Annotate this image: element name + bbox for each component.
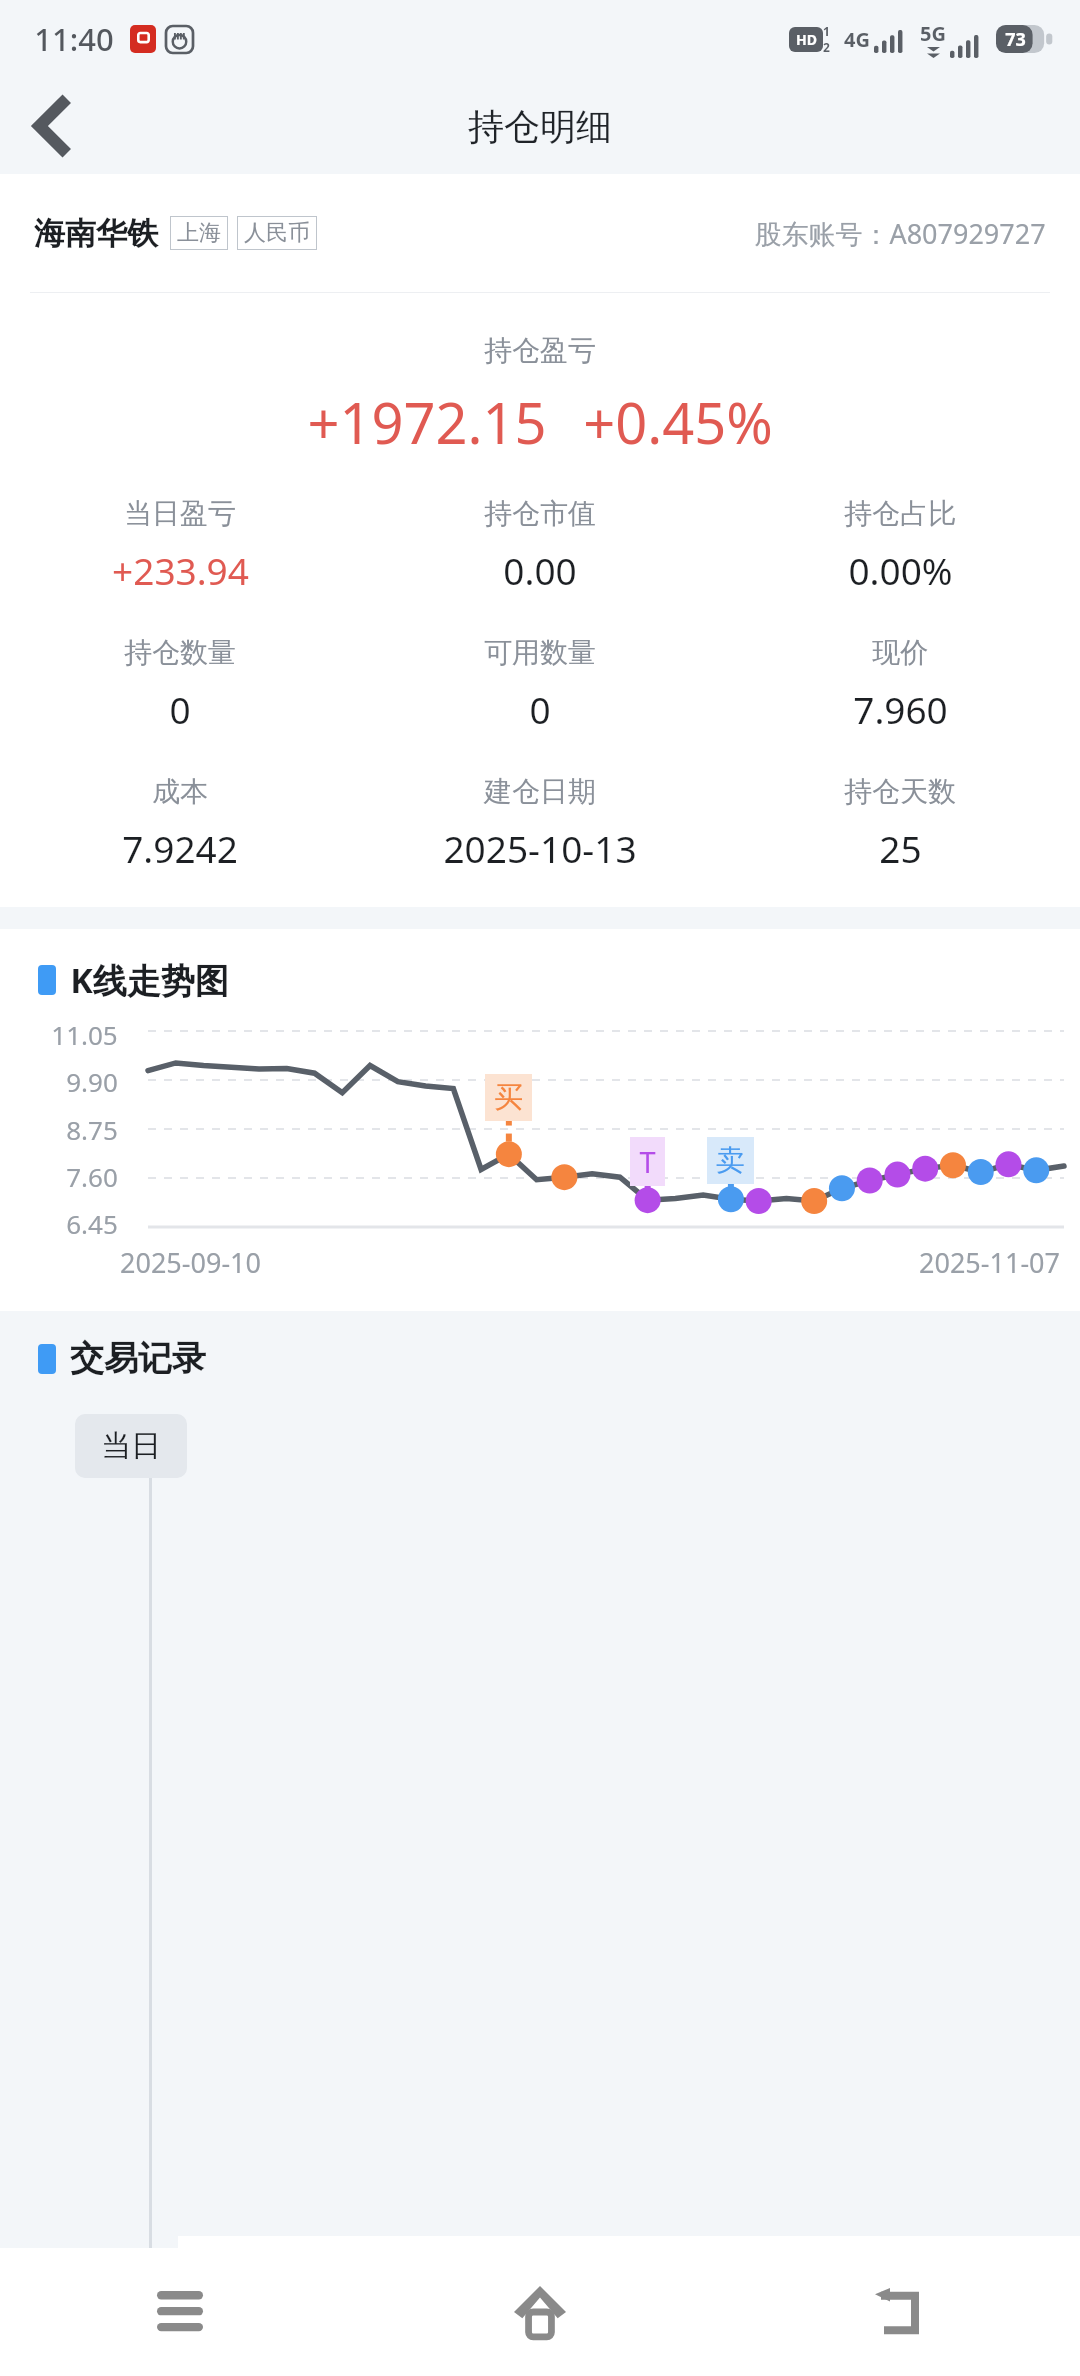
staticText: 1 [823, 23, 830, 39]
staticText: +1972.15 [307, 384, 547, 460]
staticText: 卖 [716, 1142, 745, 1179]
staticText: 成本 [152, 774, 208, 809]
staticText: 持仓明细 [468, 104, 612, 149]
staticText: 2025-11-07 [919, 1244, 1060, 1281]
staticText: HD [796, 30, 817, 49]
staticText: 0 [169, 684, 191, 734]
staticText: 2 [823, 39, 830, 55]
button[interactable]: 当日 [75, 1414, 187, 1478]
staticText: 5G [920, 20, 946, 47]
staticText: 0 [529, 684, 551, 734]
button[interactable]: Back [14, 88, 90, 164]
staticText: 2025-09-10 [120, 1244, 261, 1281]
staticText: 73 [1005, 27, 1026, 52]
staticText: +233.94 [112, 545, 249, 595]
staticText: 持仓天数 [844, 774, 956, 809]
staticText: 人民币 [244, 219, 310, 247]
staticText: 当日 [101, 1427, 161, 1465]
staticText: 持仓盈亏 [484, 333, 596, 368]
staticText: 2025-10-13 [443, 823, 637, 873]
staticText: 可用数量 [484, 635, 596, 670]
staticText: 股东账号：A807929727 [754, 215, 1046, 252]
staticText: K线走势图 [70, 957, 229, 1003]
staticText: 7.9242 [122, 823, 238, 873]
staticText: 建仓日期 [484, 774, 596, 809]
button[interactable]: Back [720, 2248, 1080, 2376]
staticText: 持仓数量 [124, 635, 236, 670]
staticText: 11:40 [34, 18, 114, 60]
staticText: 买 [494, 1079, 523, 1116]
button[interactable]: Home [360, 2248, 720, 2376]
staticText: 上海 [177, 219, 221, 247]
staticText: T [639, 1142, 656, 1181]
staticText: 4G [844, 26, 870, 53]
staticText: +0.45% [583, 384, 773, 460]
staticText: 0.00 [503, 545, 577, 595]
staticText: 7.960 [853, 684, 948, 734]
staticText: 交易记录 [70, 1337, 206, 1380]
staticText: 7.60 [66, 1159, 118, 1194]
staticText: 11.05 [51, 1017, 118, 1052]
staticText: 0.00% [848, 545, 953, 595]
button[interactable]: Recent apps [0, 2248, 360, 2376]
staticText: 当日盈亏 [124, 496, 236, 531]
staticText: 持仓市值 [484, 496, 596, 531]
staticText: 9.90 [66, 1064, 118, 1099]
staticText: 6.45 [66, 1206, 118, 1241]
staticText: 8.75 [66, 1112, 118, 1147]
staticText: 海南华铁 [34, 214, 158, 253]
staticText: 25 [879, 823, 922, 873]
staticText: 现价 [872, 635, 928, 670]
staticText: 持仓占比 [844, 496, 956, 531]
